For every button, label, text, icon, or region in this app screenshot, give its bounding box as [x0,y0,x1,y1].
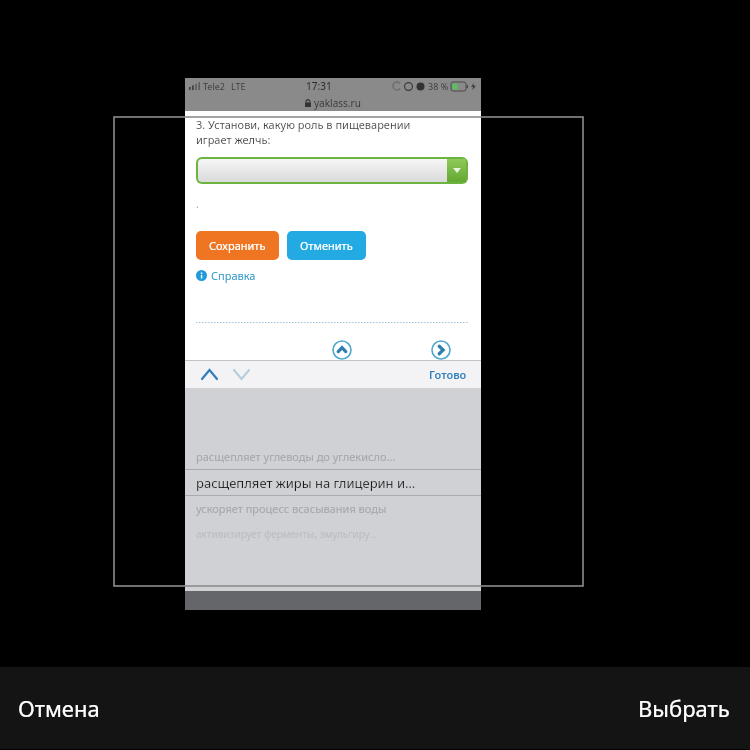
staticText: Отмена [18,693,100,723]
staticText: Отменить [300,238,353,253]
button[interactable]: ускоряет процесс всасывания воды [185,496,481,521]
button[interactable]: расщепляет углеводы до углекисло… [185,444,481,469]
staticText: расщепляет углеводы до углекисло… [196,449,396,464]
staticText: играет желчь: [196,132,271,147]
button[interactable]: Open dropdown [196,157,468,184]
button[interactable]: Next field [229,362,253,386]
button[interactable]: Отменить [287,231,366,260]
staticText: Сохранить [209,238,266,253]
staticText: ускоряет процесс всасывания воды [196,501,387,516]
button[interactable]: Готово [427,360,469,388]
staticText: 3. Установи, какую роль в пищеварении [196,117,411,132]
button[interactable]: активизирует ферменты, эмульгиру… [185,521,481,546]
button[interactable]: Previous field [197,362,221,386]
button[interactable]: Сохранить [196,231,279,260]
staticText: 38 % [428,80,449,92]
button[interactable]: Отмена [0,667,375,749]
staticText: yaklass.ru [314,96,361,110]
staticText: 17:31 [306,79,332,93]
button[interactable]: Справка [196,268,256,283]
staticText: . [196,197,199,211]
button[interactable]: Next question [428,340,454,360]
button[interactable]: Previous question [329,340,355,360]
other: Open dropdown [447,159,466,182]
staticText: LTE [231,80,246,92]
button[interactable]: Выбрать [375,667,750,749]
staticText: Tele2 [203,80,225,92]
staticText: расщепляет жиры на глицерин и… [196,474,416,492]
button[interactable]: расщепляет жиры на глицерин и… [185,470,481,495]
staticText: Готово [429,367,467,382]
staticText: Выбрать [638,693,730,723]
staticText: активизирует ферменты, эмульгиру… [196,527,378,541]
staticText: Справка [211,268,256,283]
